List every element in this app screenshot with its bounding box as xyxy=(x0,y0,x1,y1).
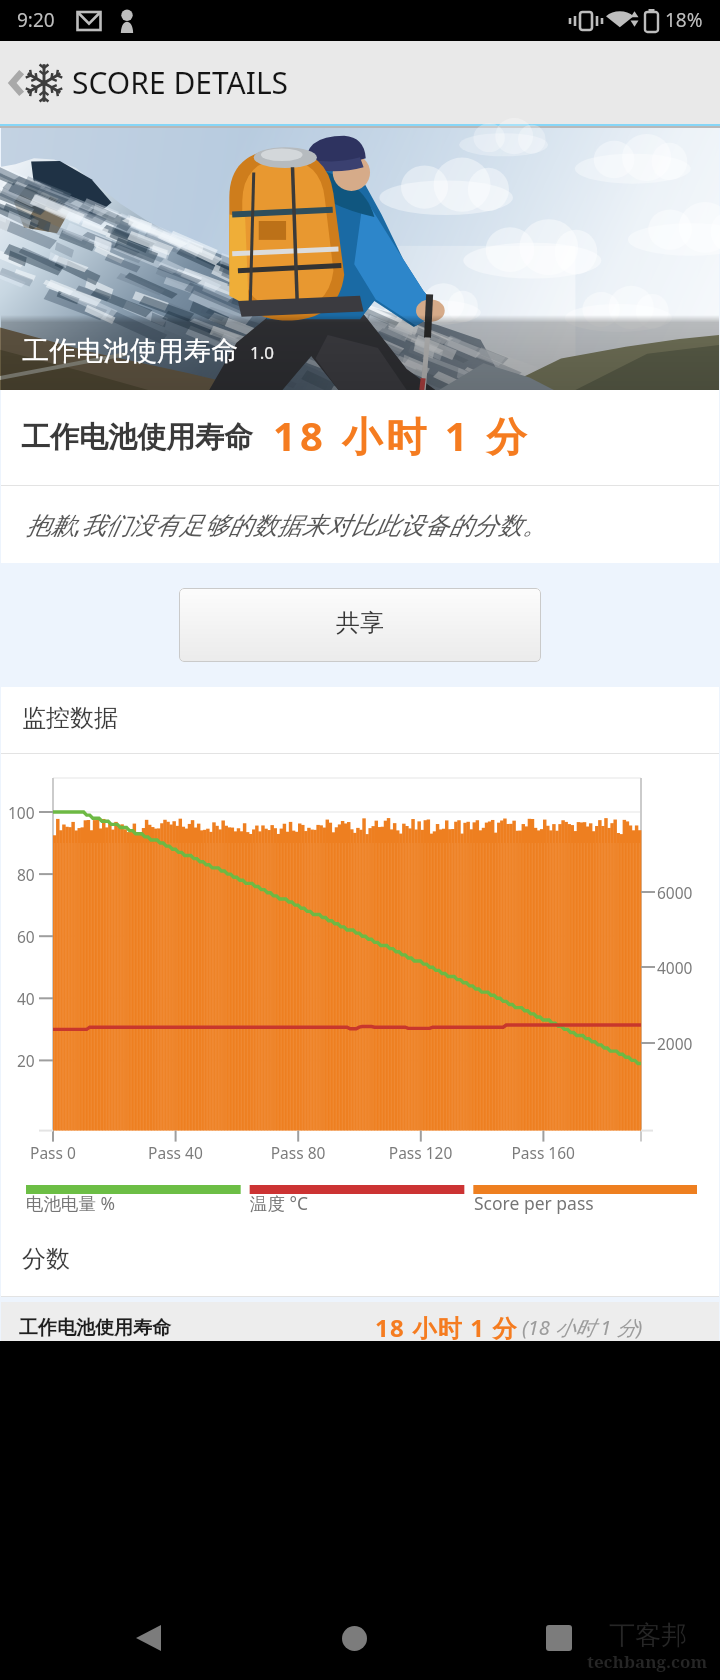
staticText: 1.0 xyxy=(250,341,275,364)
staticText: techbang.com xyxy=(587,1650,708,1673)
button[interactable]: Back xyxy=(6,62,289,103)
other: Back xyxy=(6,67,23,99)
staticText: (18 小时 1 分) xyxy=(522,1314,643,1341)
staticText: 工作电池使用寿命 xyxy=(21,419,253,456)
staticText: 丅客邦 xyxy=(609,1619,687,1652)
staticText: 电池电量 % xyxy=(26,1191,116,1215)
staticText: 温度 °C xyxy=(250,1191,309,1215)
staticText: 分数 xyxy=(22,1244,70,1274)
button[interactable]: 共享 xyxy=(179,588,541,662)
staticText: 工作电池使用寿命 xyxy=(22,334,238,368)
staticText: 9:20 xyxy=(17,7,55,33)
button[interactable]: Home xyxy=(314,1598,394,1678)
staticText: 监控数据 xyxy=(22,703,118,733)
button[interactable]: Back xyxy=(108,1598,188,1678)
staticText: 共享 xyxy=(336,608,384,638)
staticText: 18 小时 1 分 xyxy=(375,1311,518,1344)
button[interactable]: 工作电池使用寿命 xyxy=(1,1302,719,1341)
staticText: Score per pass xyxy=(474,1191,594,1215)
staticText: 18 小时 1 分 xyxy=(273,408,531,463)
staticText: 18% xyxy=(665,7,703,33)
staticText: 工作电池使用寿命 xyxy=(19,1316,171,1340)
staticText: SCORE DETAILS xyxy=(72,62,289,103)
staticText: 抱歉,我们没有足够的数据来对比此设备的分数。 xyxy=(26,508,547,541)
button[interactable]: Recent apps xyxy=(519,1598,599,1678)
